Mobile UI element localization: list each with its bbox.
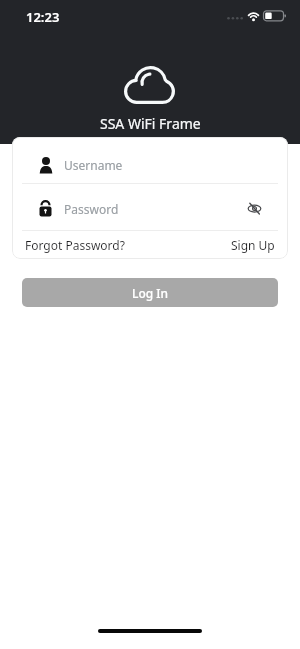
button[interactable]: Log In (22, 278, 278, 307)
button[interactable]: Sign Up (231, 237, 275, 253)
staticText: 12:23 (26, 8, 60, 26)
staticText: SSA WiFi Frame (100, 114, 201, 133)
staticText: Sign Up (231, 237, 275, 253)
staticText: Forgot Password? (25, 237, 125, 253)
button[interactable]: Forgot Password? (25, 237, 125, 253)
button[interactable] (247, 202, 262, 215)
staticText: Password (64, 201, 119, 217)
button[interactable]: Username (12, 146, 288, 183)
staticText: Log In (132, 285, 169, 301)
button[interactable]: Password (12, 187, 288, 230)
staticText: Username (64, 157, 123, 173)
